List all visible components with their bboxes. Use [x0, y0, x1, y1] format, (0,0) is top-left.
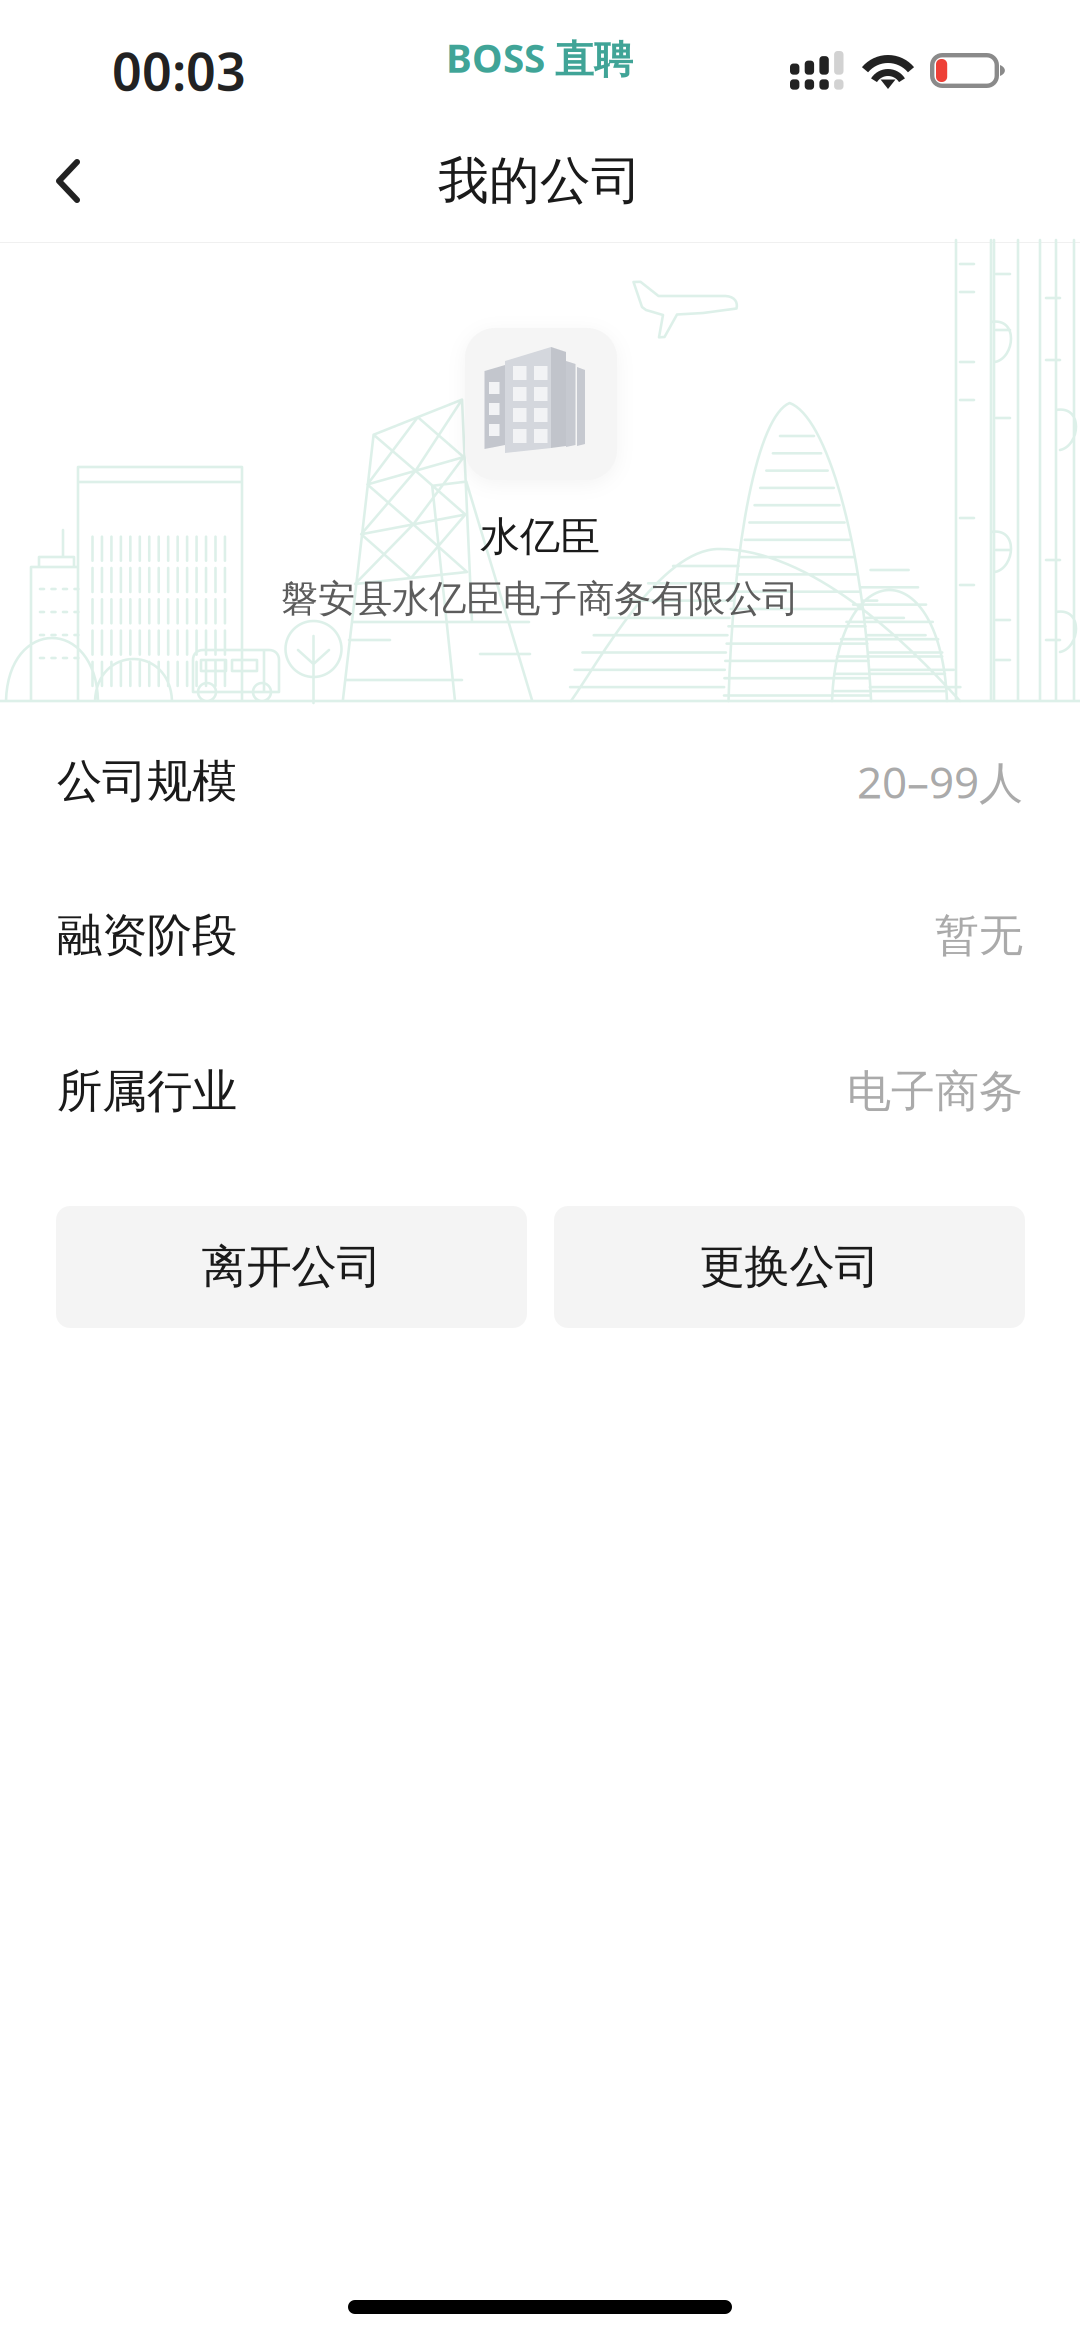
staticText: BOSS 直聘: [446, 32, 633, 83]
staticText: 所属行业: [57, 1064, 237, 1119]
staticText: 融资阶段: [57, 908, 237, 963]
button[interactable]: 更换公司: [554, 1206, 1025, 1328]
staticText: 离开公司: [201, 1239, 381, 1295]
staticText: 公司规模: [57, 754, 237, 809]
staticText: 电子商务: [847, 1064, 1023, 1118]
button[interactable]: Back: [20, 133, 116, 229]
staticText: 更换公司: [699, 1239, 879, 1295]
staticText: 20–99人: [857, 752, 1023, 811]
staticText: 我的公司: [438, 150, 642, 212]
staticText: 磐安县水亿臣电子商务有限公司: [281, 576, 799, 622]
staticText: 水亿臣: [480, 512, 600, 561]
staticText: 暂无: [935, 908, 1023, 962]
button[interactable]: 离开公司: [56, 1206, 527, 1328]
staticText: 00:03: [112, 36, 246, 105]
